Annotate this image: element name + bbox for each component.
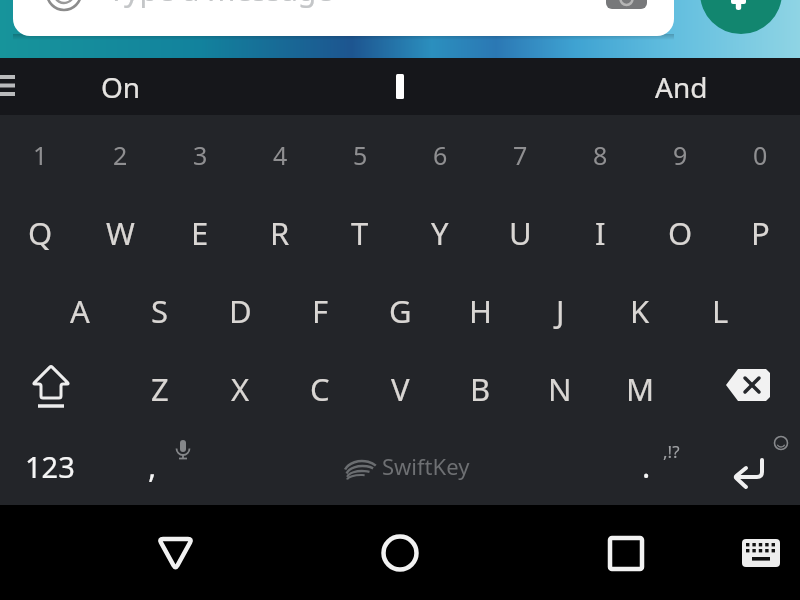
button[interactable]: H (440, 272, 520, 350)
button[interactable]: F (280, 272, 360, 350)
button[interactable] (280, 58, 520, 115)
button[interactable]: B (440, 350, 520, 428)
staticText: Z (151, 368, 169, 410)
staticText: P (751, 212, 770, 254)
staticText: 3 (193, 138, 208, 172)
button[interactable]: Z (120, 350, 200, 428)
button[interactable]: 6 (400, 116, 480, 194)
button[interactable]: D (200, 272, 280, 350)
staticText: G (389, 290, 412, 332)
staticText: 9 (673, 138, 688, 172)
button[interactable]: R (240, 194, 320, 272)
staticText: L (712, 290, 729, 332)
staticText: SwiftKey (382, 451, 470, 481)
staticText: J (556, 290, 565, 332)
button[interactable]: On (31, 58, 211, 115)
button[interactable]: M (600, 350, 680, 428)
staticText: U (509, 212, 532, 254)
button[interactable]: 4 (240, 116, 320, 194)
staticText: And (655, 68, 708, 106)
staticText: 0 (753, 138, 768, 172)
button[interactable] (11, 350, 91, 428)
staticText: T (351, 212, 369, 254)
button[interactable]: J (520, 272, 600, 350)
staticText: , (148, 445, 157, 487)
button[interactable]: L (680, 272, 760, 350)
button[interactable]: 9 (640, 116, 720, 194)
button[interactable]: Y (400, 194, 480, 272)
button[interactable]: . (606, 427, 686, 505)
button[interactable]: 7 (480, 116, 560, 194)
button[interactable]: V (360, 350, 440, 428)
button[interactable]: U (480, 194, 560, 272)
button[interactable]: SwiftKey (330, 427, 470, 505)
button[interactable]: G (360, 272, 440, 350)
staticText: R (270, 212, 290, 254)
staticText: M (626, 368, 655, 410)
staticText: 5 (353, 138, 368, 172)
button[interactable]: 3 (160, 116, 240, 194)
button[interactable]: S (120, 272, 200, 350)
staticText: E (191, 212, 209, 254)
staticText: On (101, 68, 141, 106)
button[interactable]: P (720, 194, 800, 272)
staticText: Q (28, 212, 53, 254)
staticText: K (630, 290, 650, 332)
staticText: 4 (273, 138, 288, 172)
staticText: C (310, 368, 330, 410)
staticText: W (106, 212, 135, 254)
button[interactable]: C (280, 350, 360, 428)
button[interactable]: Q (0, 194, 80, 272)
staticText: D (229, 290, 252, 332)
button[interactable] (721, 513, 800, 593)
button[interactable]: X (200, 350, 280, 428)
staticText: Type a message (108, 0, 334, 10)
button[interactable] (40, 0, 90, 20)
button[interactable]: O (640, 194, 720, 272)
button[interactable]: 1 (0, 116, 80, 194)
button[interactable] (360, 513, 440, 593)
button[interactable]: K (600, 272, 680, 350)
staticText: 7 (513, 138, 528, 172)
staticText: A (70, 290, 90, 332)
button[interactable] (707, 427, 800, 505)
staticText: X (231, 368, 250, 410)
button[interactable]: E (160, 194, 240, 272)
staticText: ,!? (663, 440, 680, 463)
button[interactable]: A (40, 272, 120, 350)
button[interactable]: 123 (0, 427, 100, 505)
staticText: 6 (433, 138, 448, 172)
staticText: Y (431, 212, 449, 254)
button[interactable]: 2 (80, 116, 160, 194)
staticText: 123 (25, 447, 75, 486)
staticText: V (391, 368, 410, 410)
staticText: 2 (113, 138, 128, 172)
staticText: B (470, 368, 491, 410)
staticText: 8 (593, 138, 608, 172)
button[interactable] (135, 513, 215, 593)
button[interactable]: 0 (720, 116, 800, 194)
button[interactable]: W (80, 194, 160, 272)
button[interactable] (586, 513, 666, 593)
button[interactable]: 5 (320, 116, 400, 194)
staticText: H (469, 290, 492, 332)
button[interactable]: 8 (560, 116, 640, 194)
button[interactable] (600, 0, 654, 14)
button[interactable]: I (560, 194, 640, 272)
button[interactable]: , (112, 427, 192, 505)
button[interactable]: N (520, 350, 600, 428)
staticText: . (642, 445, 651, 487)
button[interactable] (700, 0, 782, 34)
button[interactable] (708, 350, 788, 428)
button[interactable]: T (320, 194, 400, 272)
staticText: F (312, 290, 329, 332)
button[interactable] (13, 0, 674, 36)
staticText: S (151, 290, 169, 332)
staticText: N (548, 368, 572, 410)
button[interactable] (0, 58, 30, 115)
staticText: 1 (33, 138, 48, 172)
button[interactable]: And (591, 58, 771, 115)
staticText: I (595, 212, 606, 254)
staticText: O (668, 212, 693, 254)
